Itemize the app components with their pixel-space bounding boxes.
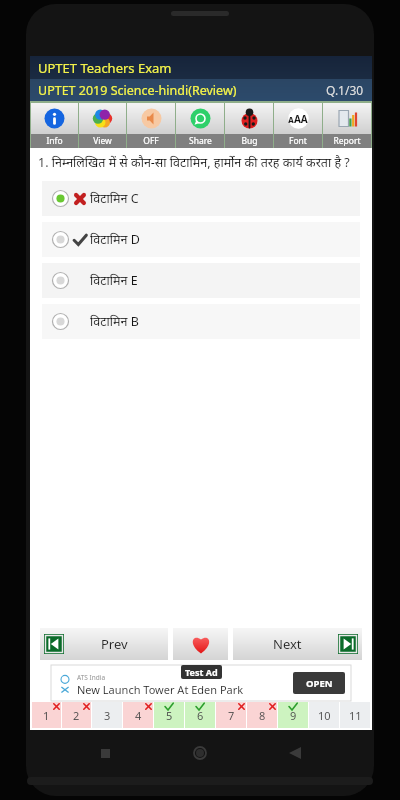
button[interactable]: View	[79, 134, 126, 148]
button[interactable]: Font	[274, 134, 322, 148]
staticText: 8	[259, 708, 266, 723]
staticText: Share	[189, 135, 212, 147]
staticText: Font	[289, 135, 307, 147]
staticText: 2	[73, 708, 80, 723]
staticText: Report	[333, 135, 361, 147]
button[interactable]: Home	[185, 738, 215, 768]
button[interactable]: OFF	[127, 134, 175, 148]
staticText: Test Ad	[185, 666, 218, 678]
button[interactable]: विटामिन B	[42, 304, 360, 339]
button[interactable]: Bug	[225, 134, 273, 148]
button[interactable]: विटामिन D	[42, 222, 360, 257]
staticText: 7	[228, 708, 235, 723]
button[interactable]: Recents	[90, 738, 120, 768]
button[interactable]: 3	[92, 702, 122, 728]
staticText: 10	[318, 708, 331, 723]
staticText: Info	[46, 135, 63, 147]
staticText: OFF	[143, 135, 159, 147]
staticText: 6	[197, 708, 204, 723]
button[interactable]: Share	[176, 134, 224, 148]
staticText: 1. निम्नलिखित में से कौन-सा विटामिन, हार…	[38, 154, 350, 171]
staticText: 1	[43, 708, 50, 723]
button[interactable]: 9	[278, 702, 308, 728]
button[interactable]: 7	[216, 702, 246, 728]
button[interactable]: Report	[323, 134, 371, 148]
staticText: Bug	[241, 135, 258, 147]
button[interactable]: 10	[309, 702, 339, 728]
button[interactable]: Font	[274, 103, 322, 134]
staticText: Next	[273, 635, 302, 653]
button[interactable]: विटामिन C	[42, 181, 360, 216]
staticText: View	[93, 135, 112, 147]
staticText: 11	[349, 708, 362, 723]
staticText: 4	[135, 708, 142, 723]
staticText: 3	[104, 708, 111, 723]
button[interactable]: OFF	[127, 103, 175, 134]
button[interactable]: 8	[247, 702, 277, 728]
staticText: 9	[290, 708, 297, 723]
button[interactable]: Info	[31, 103, 78, 134]
button[interactable]: ATS India	[51, 665, 351, 701]
staticText: ATS India	[77, 673, 106, 682]
staticText: New Launch Tower At Eden Park	[77, 682, 244, 697]
button[interactable]: OPEN	[293, 672, 345, 694]
button[interactable]: Report	[323, 103, 371, 134]
staticText: Prev	[101, 635, 128, 653]
button[interactable]: Back	[280, 738, 310, 768]
button[interactable]: Share	[176, 103, 224, 134]
staticText: विटामिन B	[90, 313, 139, 330]
staticText: विटामिन E	[90, 272, 138, 289]
button[interactable]: 4	[123, 702, 153, 728]
button[interactable]: 2	[62, 702, 91, 728]
staticText: UPTET 2019 Science-hindi(Review)	[38, 82, 237, 99]
staticText: विटामिन D	[90, 231, 140, 248]
button[interactable]: Next	[233, 628, 362, 660]
staticText: Q.1/30	[326, 82, 364, 98]
button[interactable]: View	[79, 103, 126, 134]
staticText: 5	[166, 708, 173, 723]
button[interactable]: Info	[31, 134, 78, 148]
staticText: UPTET Teachers Exam	[38, 59, 172, 77]
button[interactable]: 6	[185, 702, 215, 728]
button[interactable]: विटामिन E	[42, 263, 360, 298]
button[interactable]: Prev	[40, 628, 168, 660]
button[interactable]: 1	[32, 702, 61, 728]
staticText: ᴀAA	[288, 112, 308, 126]
button[interactable]: Bug	[225, 103, 273, 134]
staticText: विटामिन C	[90, 190, 139, 207]
button[interactable]: 11	[340, 702, 370, 728]
button[interactable]: 5	[154, 702, 184, 728]
staticText: OPEN	[306, 677, 333, 690]
button[interactable]: Favourite	[173, 628, 228, 660]
